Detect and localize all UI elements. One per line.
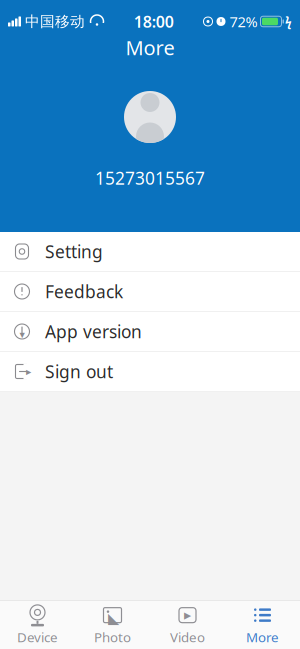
staticText: More: [246, 628, 279, 646]
staticText: ϟ: [285, 13, 292, 29]
staticText: Photo: [94, 628, 131, 646]
button[interactable]: More: [0, 32, 300, 62]
staticText: Setting: [45, 240, 103, 263]
button[interactable]: ◣: [75, 601, 150, 648]
staticText: ◣: [108, 610, 119, 626]
button[interactable]: Feedback: [0, 272, 300, 312]
button[interactable]: Setting: [0, 232, 300, 272]
staticText: 中国移动: [25, 12, 85, 30]
staticText: Feedback: [45, 280, 123, 303]
button[interactable]: ▶: [150, 601, 225, 648]
staticText: Video: [170, 628, 205, 646]
button[interactable]: ▸: [0, 352, 300, 392]
staticText: 15273015567: [95, 166, 205, 189]
staticText: ▶: [184, 610, 191, 620]
button[interactable]: ▾: [0, 312, 300, 352]
staticText: Device: [17, 628, 58, 646]
staticText: More: [125, 34, 174, 61]
staticText: 18:00: [134, 11, 174, 32]
staticText: Sign out: [45, 360, 113, 383]
staticText: App version: [45, 320, 142, 343]
button[interactable]: More: [225, 601, 300, 648]
staticText: ▾: [19, 328, 24, 340]
staticText: ▸: [26, 365, 31, 377]
staticText: 72%: [229, 12, 257, 31]
button[interactable]: Device: [0, 601, 75, 648]
